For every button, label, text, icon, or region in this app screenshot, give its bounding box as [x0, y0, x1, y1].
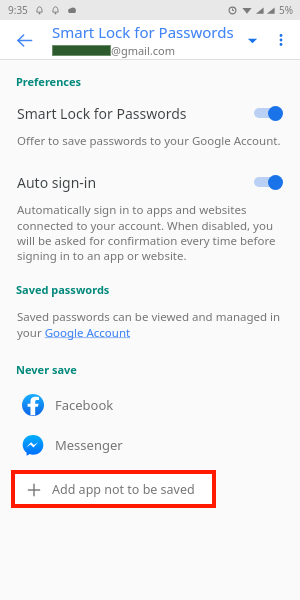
button[interactable]: [252, 105, 286, 121]
button[interactable]: Messenger: [0, 428, 300, 462]
staticText: Saved passwords: [16, 282, 110, 297]
staticText: @gmail.com: [111, 43, 175, 58]
staticText: Facebook: [55, 396, 114, 414]
button[interactable]: [252, 174, 286, 190]
staticText: 9:35: [8, 3, 28, 17]
button[interactable]: Facebook: [0, 388, 300, 422]
staticText: Smart Lock for Passwords: [52, 22, 234, 42]
button[interactable]: Smart Lock for Passwords: [0, 102, 300, 124]
staticText: Preferences: [16, 74, 82, 89]
staticText: Smart Lock for Passwords: [17, 104, 187, 123]
staticText: Saved passwords can be viewed and manage…: [17, 309, 281, 340]
staticText: 5%: [279, 3, 294, 17]
button[interactable]: Auto sign-in: [0, 171, 300, 193]
button[interactable]: Add app not to be saved: [15, 474, 212, 504]
staticText: Automatically sign in to apps and websit…: [17, 202, 284, 263]
staticText: Add app not to be saved: [52, 481, 195, 498]
button[interactable]: Expand account list: [238, 26, 266, 54]
staticText: Offer to save passwords to your Google A…: [17, 133, 281, 149]
staticText: Messenger: [55, 436, 123, 454]
button[interactable]: Back: [8, 24, 40, 56]
staticText: Auto sign-in: [17, 173, 97, 192]
staticText: Never save: [16, 362, 77, 377]
button[interactable]: More options: [266, 25, 296, 55]
